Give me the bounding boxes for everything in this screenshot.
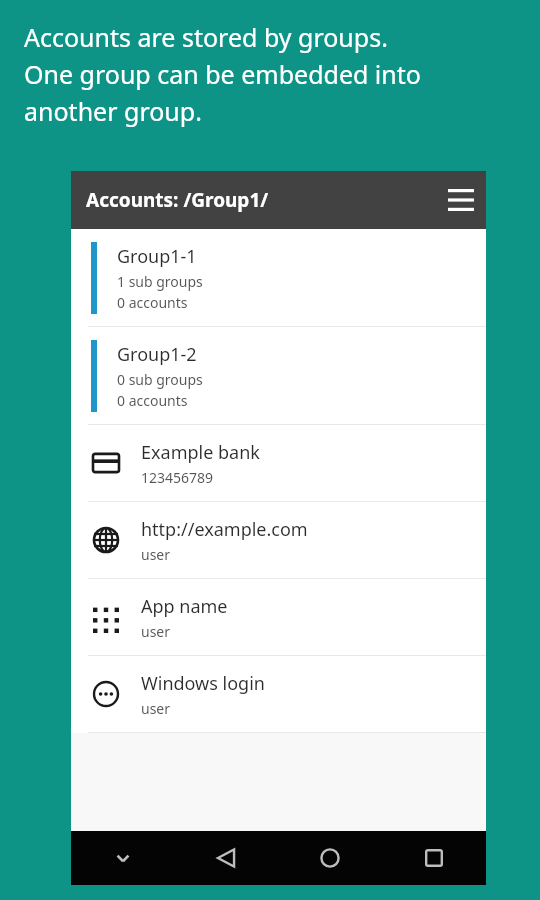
button[interactable]: Example bank <box>71 425 486 501</box>
staticText: 0 sub groups <box>117 370 203 389</box>
staticText: Windows login <box>141 671 265 696</box>
button[interactable]: Group1-1 <box>71 229 486 326</box>
button[interactable]: Windows login <box>71 656 486 732</box>
button[interactable]: Hide keyboard <box>71 831 174 885</box>
staticText: http://example.com <box>141 517 308 542</box>
staticText: Accounts are stored by groups. One group… <box>24 20 421 128</box>
staticText: user <box>141 699 171 718</box>
staticText: Group1-1 <box>117 244 197 269</box>
button[interactable]: Recents <box>382 831 486 885</box>
button[interactable]: Back <box>174 831 278 885</box>
staticText: Accounts: /Group1/ <box>86 187 269 213</box>
button[interactable]: Home <box>278 831 382 885</box>
staticText: 0 accounts <box>117 391 188 410</box>
button[interactable]: App name <box>71 579 486 655</box>
staticText: 1 sub groups <box>117 272 203 291</box>
staticText: 123456789 <box>141 468 214 487</box>
staticText: 0 accounts <box>117 293 188 312</box>
staticText: Example bank <box>141 440 260 465</box>
staticText: App name <box>141 594 228 619</box>
button[interactable]: Menu <box>436 175 486 225</box>
button[interactable]: Group1-2 <box>71 327 486 424</box>
staticText: Group1-2 <box>117 342 197 367</box>
button[interactable]: http://example.com <box>71 502 486 578</box>
staticText: user <box>141 545 171 564</box>
staticText: user <box>141 622 171 641</box>
